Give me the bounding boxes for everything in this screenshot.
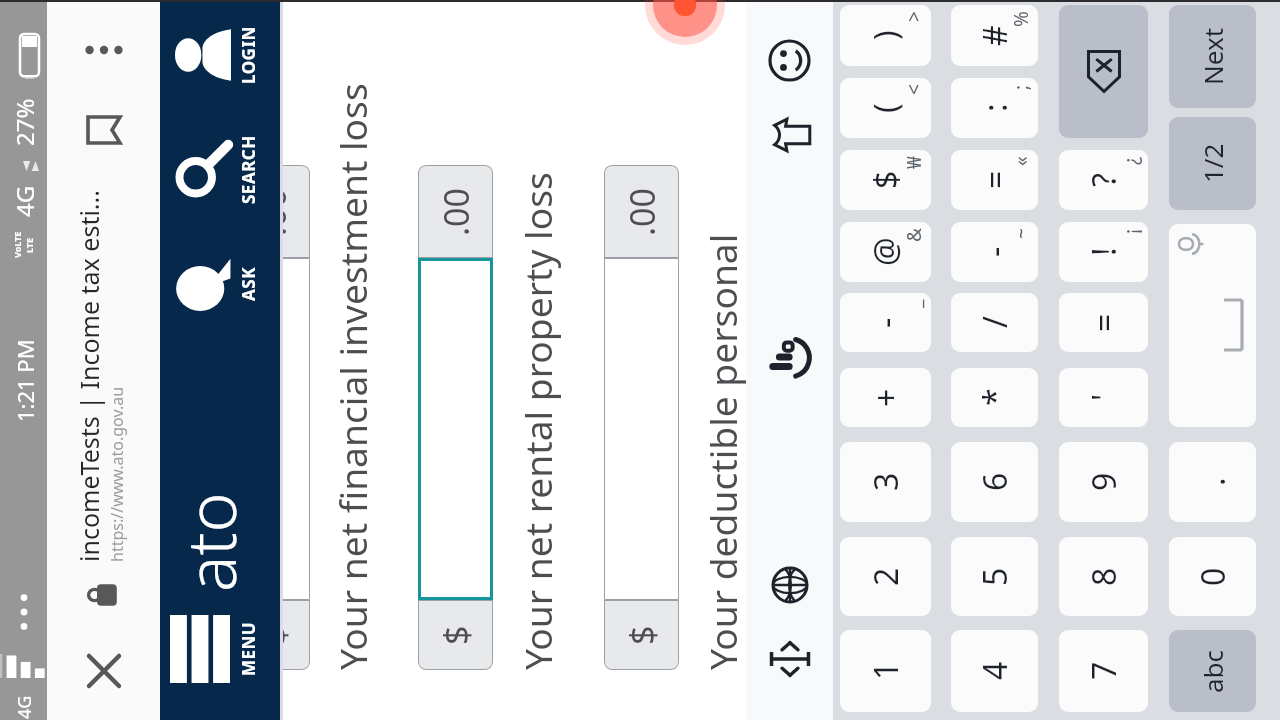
staticText: « (1008, 156, 1034, 166)
button[interactable]: $ (418, 600, 493, 670)
button[interactable]: 5 (951, 537, 1038, 616)
button[interactable]: 3 (840, 442, 931, 522)
staticText: $ (619, 625, 665, 645)
button[interactable]: : (951, 78, 1038, 138)
button[interactable]: ' (1059, 368, 1148, 427)
button[interactable]: Voice input (746, 323, 833, 397)
staticText: . (1191, 477, 1235, 486)
staticText: $ (864, 170, 908, 189)
staticText: 3 (864, 472, 908, 491)
button[interactable]: * (951, 368, 1038, 427)
staticText: 5 (973, 567, 1017, 586)
staticText: ato (163, 492, 256, 592)
button[interactable]: 1/2 (1169, 117, 1256, 210)
staticText: * (973, 388, 1017, 406)
staticText: https://www.ato.gov.au (106, 386, 128, 562)
button[interactable]: 0 (1169, 537, 1256, 616)
button[interactable]: ? (1059, 150, 1148, 210)
staticText: Next (1195, 27, 1230, 85)
button[interactable]: . (1169, 442, 1256, 522)
staticText: 1/2 (1195, 143, 1230, 183)
button[interactable]: Stickers (746, 98, 833, 172)
button[interactable]: MENU (170, 596, 275, 702)
button[interactable]: 8 (1059, 537, 1148, 616)
button[interactable]: LOGIN (170, 3, 275, 107)
staticText: ) (864, 30, 908, 40)
button[interactable]: Language (746, 548, 833, 622)
button[interactable]: 2 (840, 537, 931, 616)
staticText: ¡ (1118, 228, 1144, 234)
staticText: 9 (1082, 472, 1126, 491)
staticText: Your net financial investment loss (327, 83, 378, 670)
staticText: 8 (1082, 567, 1126, 586)
button[interactable] (418, 258, 493, 600)
button[interactable]: abc (1169, 630, 1256, 712)
button[interactable]: .00 (604, 165, 679, 258)
button[interactable]: / (951, 293, 1038, 352)
staticText: abc (1195, 649, 1230, 693)
staticText: - (864, 317, 908, 328)
button[interactable]: Space (1169, 224, 1256, 427)
staticText: @ (864, 237, 908, 266)
button[interactable]: 1 (840, 630, 931, 712)
staticText: _ (901, 299, 927, 308)
staticText: : (973, 103, 1017, 112)
button[interactable]: .00 (418, 165, 493, 258)
button[interactable]: 6 (951, 442, 1038, 522)
staticText: LTE (23, 237, 35, 253)
button[interactable]: + (840, 368, 931, 427)
button[interactable]: .00 (280, 165, 310, 258)
button[interactable]: ( (840, 78, 931, 138)
button[interactable]: ASK (170, 232, 275, 336)
staticText: 7 (1082, 661, 1126, 680)
staticText: ; (1008, 84, 1034, 90)
button[interactable]: SEARCH (170, 118, 275, 222)
button[interactable]: Next (1169, 5, 1256, 108)
button[interactable]: # (951, 5, 1038, 66)
button[interactable]: ) (840, 5, 931, 66)
staticText: 6 (973, 472, 1017, 491)
button[interactable]: ! (1059, 222, 1148, 282)
button[interactable]: - (951, 222, 1038, 282)
staticText: LOGIN (237, 26, 260, 84)
button[interactable]: $ (280, 600, 310, 670)
staticText: 0 (1191, 567, 1235, 586)
button[interactable]: 7 (1059, 630, 1148, 712)
staticText: # (973, 25, 1017, 46)
staticText: .00 (280, 187, 296, 236)
staticText: ' (1082, 393, 1126, 401)
staticText: + (864, 388, 908, 407)
button[interactable]: - (840, 293, 931, 352)
button[interactable]: Delete (1059, 5, 1148, 138)
staticText: VoLTE (11, 231, 23, 258)
button[interactable]: $ (840, 150, 931, 210)
button[interactable]: Resize keyboard (746, 622, 833, 696)
button[interactable]: 9 (1059, 442, 1148, 522)
staticText: ₩ (901, 156, 927, 169)
button[interactable]: Emoji (746, 24, 833, 98)
staticText: 4G (12, 695, 37, 719)
button[interactable]: = (1059, 293, 1148, 352)
staticText: .00 (433, 187, 479, 236)
button[interactable]: 4 (951, 630, 1038, 712)
staticText: 1:21 PM (10, 339, 40, 422)
staticText: $ (433, 625, 479, 645)
staticText: - (973, 246, 1017, 257)
button[interactable]: More options (74, 20, 134, 80)
button[interactable] (280, 258, 310, 600)
staticText: % (1008, 11, 1034, 27)
staticText: 2 (864, 567, 908, 586)
button[interactable]: Close (71, 638, 137, 704)
staticText: ( (864, 103, 908, 113)
staticText: ¿ (1118, 156, 1144, 165)
staticText: > (901, 11, 927, 22)
staticText: 4 (973, 661, 1017, 680)
staticText: $ (280, 625, 296, 645)
button[interactable]: = (951, 150, 1038, 210)
button[interactable] (604, 258, 679, 600)
staticText: = (1082, 313, 1126, 332)
button[interactable]: @ (840, 222, 931, 282)
staticText: < (901, 84, 927, 95)
button[interactable]: $ (604, 600, 679, 670)
button[interactable]: Tabs (74, 100, 134, 160)
